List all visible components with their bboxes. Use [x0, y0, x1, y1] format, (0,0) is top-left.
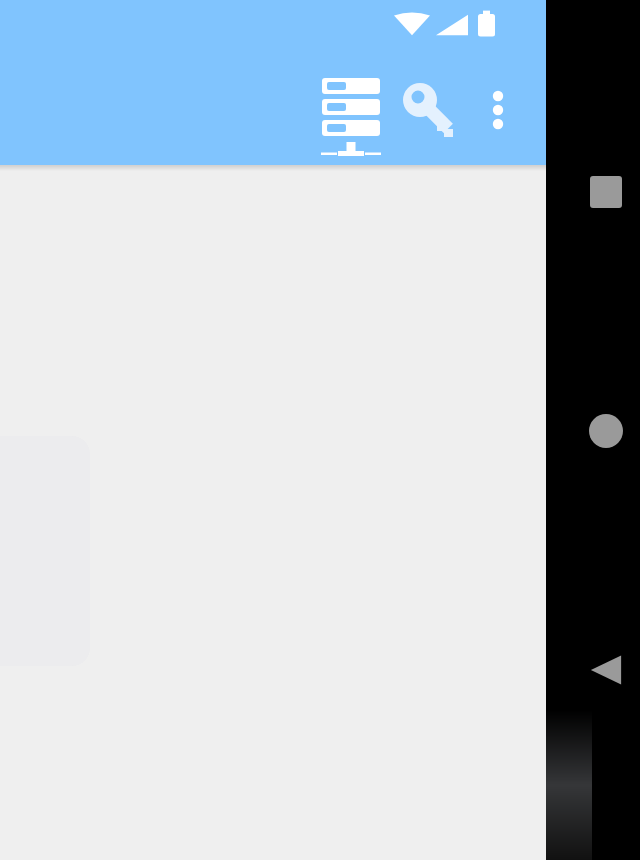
button[interactable]: More options: [468, 68, 528, 152]
button[interactable]: Recent apps: [572, 158, 640, 226]
button[interactable]: VPN key: [390, 68, 468, 152]
button[interactable]: Back: [572, 636, 640, 704]
button[interactable]: Home: [572, 397, 640, 465]
button[interactable]: Servers: [312, 68, 390, 152]
